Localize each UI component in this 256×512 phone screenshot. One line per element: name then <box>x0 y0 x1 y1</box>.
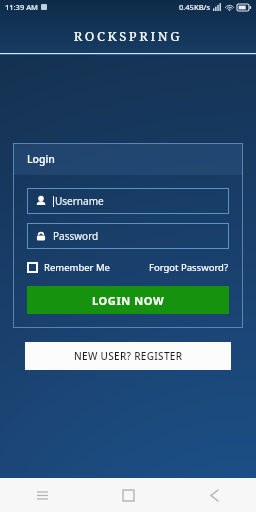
staticText: NEW USER? REGISTER <box>74 349 183 363</box>
button[interactable]: NEW USER? REGISTER <box>25 342 231 370</box>
staticText: Password <box>53 229 99 243</box>
button[interactable]: LOGIN NOW <box>27 286 229 314</box>
button[interactable]: Back <box>186 478 242 512</box>
button[interactable]: Remember Me <box>27 261 110 274</box>
staticText: Username <box>55 194 104 208</box>
staticText: Remember Me <box>44 261 110 274</box>
staticText: ROCKSPRING <box>0 27 256 45</box>
staticText: 11:39 AM <box>5 2 38 12</box>
button[interactable]: Username <box>27 188 229 214</box>
button[interactable]: Login <box>13 143 243 175</box>
button[interactable]: Password <box>27 223 229 249</box>
button[interactable]: Recent apps <box>14 478 70 512</box>
staticText: Forgot Password? <box>149 261 229 274</box>
button[interactable]: Home <box>100 478 156 512</box>
staticText: 0.45KB/s <box>179 2 211 12</box>
button[interactable]: Forgot Password? <box>149 261 229 274</box>
staticText: Login <box>27 152 55 166</box>
staticText: LOGIN NOW <box>92 293 165 308</box>
